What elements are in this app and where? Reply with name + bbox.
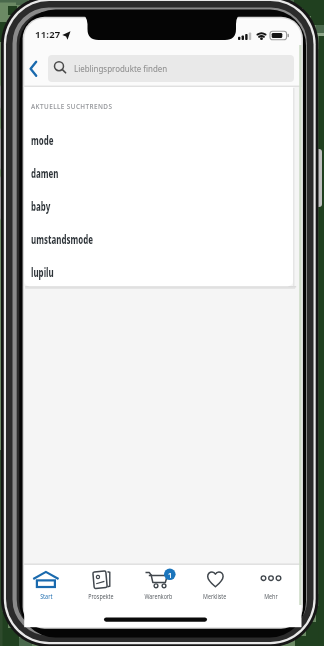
staticText: damen — [31, 165, 59, 182]
staticText: 11:27 — [35, 28, 61, 41]
staticText: Merkliste — [203, 592, 227, 601]
button[interactable]: Start — [19, 565, 73, 626]
button[interactable]: Prospekte — [74, 565, 128, 626]
button[interactable]: baby — [24, 190, 293, 223]
staticText: lupilu — [31, 264, 54, 281]
staticText: Start — [40, 592, 53, 601]
staticText: 1 — [168, 570, 173, 580]
staticText: mode — [31, 132, 54, 149]
staticText: Prospekte — [88, 592, 114, 601]
button[interactable]: damen — [24, 157, 293, 190]
staticText: Mehr — [264, 592, 278, 601]
button[interactable]: Warenkorb — [131, 565, 185, 626]
staticText: AKTUELLE SUCHTRENDS — [31, 101, 113, 111]
staticText: Lieblingsprodukte finden — [74, 63, 168, 75]
staticText: baby — [31, 198, 50, 215]
staticText: Warenkorb — [144, 592, 172, 601]
button[interactable]: mode — [24, 124, 293, 157]
button[interactable]: Mehr — [244, 565, 298, 626]
button[interactable]: umstandsmode — [24, 223, 293, 256]
button[interactable]: Merkliste — [188, 565, 242, 626]
button[interactable] — [25, 55, 42, 82]
button[interactable]: Lieblingsprodukte finden — [48, 55, 294, 82]
staticText: umstandsmode — [31, 231, 93, 248]
button[interactable]: lupilu — [24, 256, 293, 289]
